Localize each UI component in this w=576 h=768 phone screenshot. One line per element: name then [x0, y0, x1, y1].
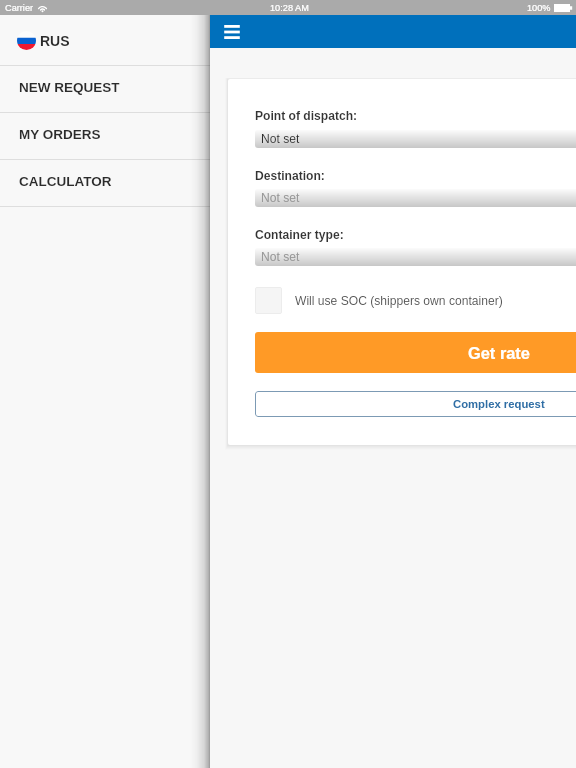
staticText: Carrier: [5, 3, 34, 13]
staticText: Not set: [261, 132, 300, 146]
button[interactable]: RUS: [0, 15, 210, 65]
staticText: MY ORDERS: [19, 127, 101, 142]
staticText: Container type:: [255, 228, 344, 242]
button[interactable]: Not set: [255, 189, 576, 207]
button[interactable]: Get rate: [255, 332, 576, 373]
staticText: NEW REQUEST: [19, 80, 120, 95]
button[interactable]: Will use SOC (shippers own container): [255, 287, 503, 314]
staticText: 10:28 AM: [270, 3, 309, 13]
staticText: RUS: [40, 33, 70, 49]
staticText: Not set: [261, 250, 300, 264]
button[interactable]: CALCULATOR: [0, 160, 210, 206]
staticText: Not set: [261, 191, 300, 205]
staticText: 100%: [527, 3, 551, 13]
button[interactable]: Not set: [255, 130, 576, 148]
button[interactable]: Not set: [255, 248, 576, 266]
staticText: CALCULATOR: [19, 174, 112, 189]
button[interactable]: Complex request: [255, 391, 576, 417]
staticText: Get rate: [468, 344, 530, 362]
staticText: Complex request: [453, 398, 545, 411]
staticText: Will use SOC (shippers own container): [295, 294, 503, 308]
button[interactable]: Open navigation drawer: [219, 19, 245, 45]
staticText: Destination:: [255, 169, 325, 183]
button[interactable]: MY ORDERS: [0, 113, 210, 159]
staticText: Point of dispatch:: [255, 109, 358, 123]
button[interactable]: NEW REQUEST: [0, 66, 210, 112]
